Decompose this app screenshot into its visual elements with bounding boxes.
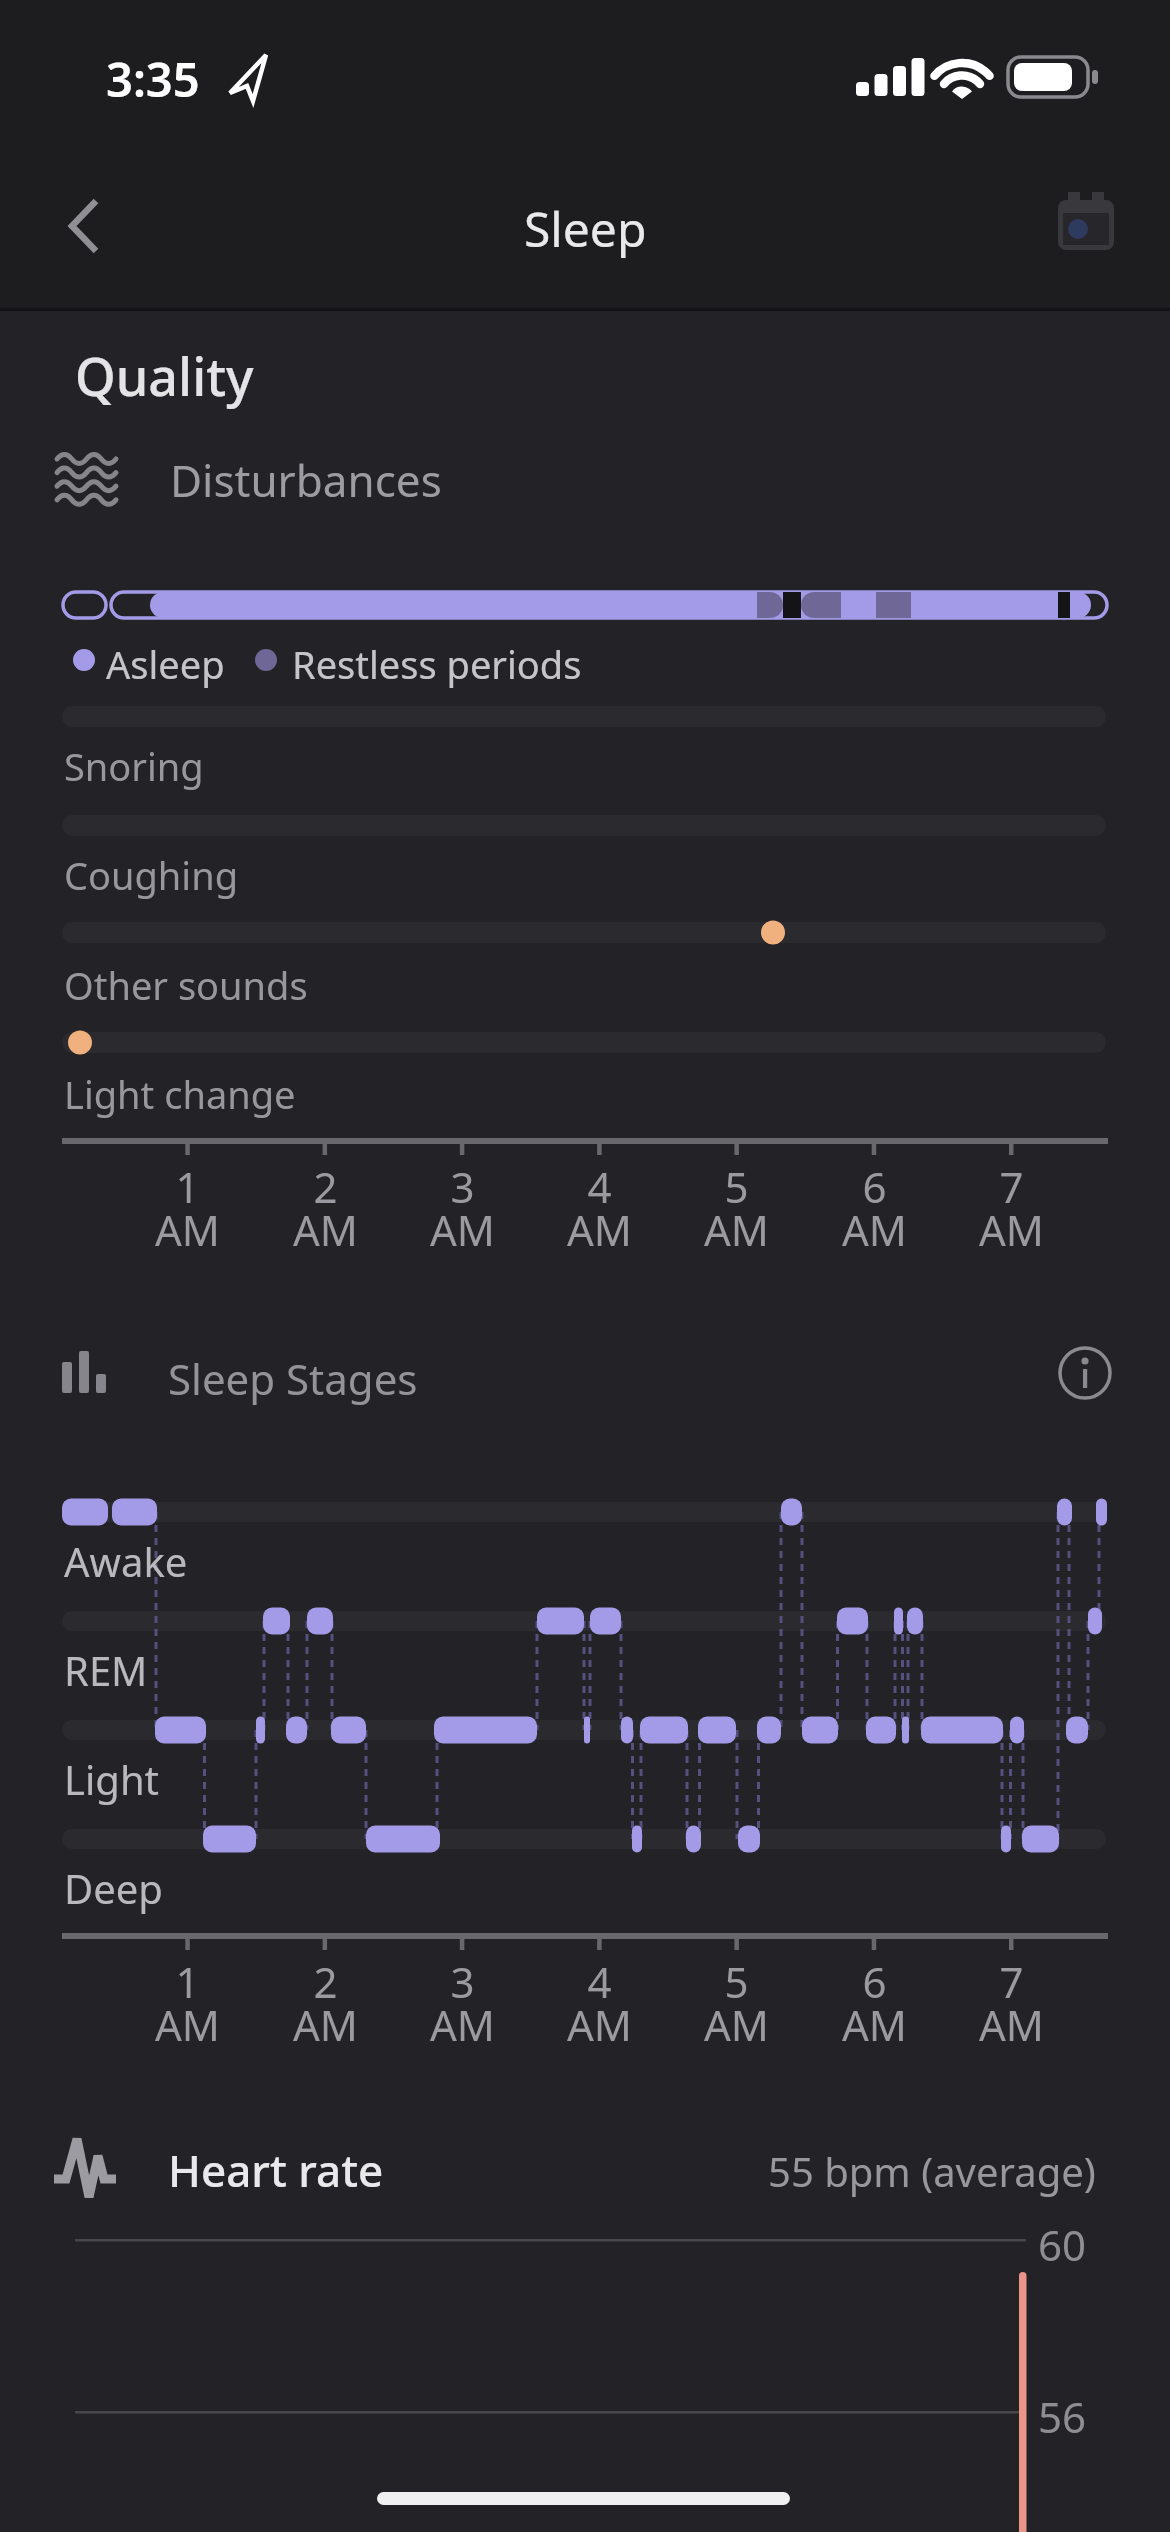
staticText: 2 [313, 1158, 338, 1215]
staticText: AM [567, 1996, 632, 2053]
staticText: AM [979, 1201, 1044, 1258]
staticText: AM [430, 1201, 495, 1258]
staticText: Coughing [64, 849, 239, 901]
staticText: Awake [64, 1534, 188, 1588]
staticText: Snoring [64, 740, 204, 792]
staticText: 3 [450, 1953, 475, 2010]
button[interactable] [48, 188, 124, 264]
staticText: AM [155, 1996, 220, 2053]
staticText: REM [64, 1643, 148, 1697]
staticText: 56 [1038, 2388, 1087, 2445]
staticText: AM [567, 1201, 632, 1258]
staticText: Heart rate [168, 2140, 384, 2200]
staticText: 6 [862, 1158, 887, 1215]
staticText: 5 [724, 1953, 749, 2010]
staticText: 1 [175, 1158, 200, 1215]
staticText: 55 bpm (average) [768, 2144, 1096, 2198]
staticText: 5 [724, 1158, 749, 1215]
staticText: 7 [999, 1158, 1024, 1215]
staticText: Deep [64, 1861, 163, 1915]
staticText: 2 [313, 1953, 338, 2010]
staticText: Light [64, 1752, 160, 1806]
button[interactable] [1051, 1339, 1119, 1407]
staticText: 3:35 [106, 47, 200, 111]
staticText: 7 [999, 1953, 1024, 2010]
staticText: 4 [587, 1953, 612, 2010]
staticText: AM [430, 1996, 495, 2053]
staticText: 3 [450, 1158, 475, 1215]
staticText: Other sounds [64, 959, 308, 1011]
staticText: 4 [587, 1158, 612, 1215]
staticText: 1 [175, 1953, 200, 2010]
staticText: AM [979, 1996, 1044, 2053]
staticText: Restless periods [292, 638, 582, 690]
staticText: 60 [1038, 2216, 1087, 2273]
staticText: Asleep [106, 638, 225, 690]
staticText: AM [155, 1201, 220, 1258]
staticText: AM [842, 1201, 907, 1258]
staticText: AM [293, 1201, 358, 1258]
staticText: Disturbances [170, 450, 442, 510]
staticText: AM [842, 1996, 907, 2053]
staticText: AM [704, 1201, 769, 1258]
staticText: Sleep Stages [168, 1350, 418, 1407]
staticText: Light change [64, 1068, 296, 1120]
staticText: 6 [862, 1953, 887, 2010]
staticText: Quality [75, 340, 254, 411]
button[interactable] [1038, 182, 1130, 274]
staticText: AM [704, 1996, 769, 2053]
staticText: Sleep [524, 196, 647, 261]
staticText: AM [293, 1996, 358, 2053]
